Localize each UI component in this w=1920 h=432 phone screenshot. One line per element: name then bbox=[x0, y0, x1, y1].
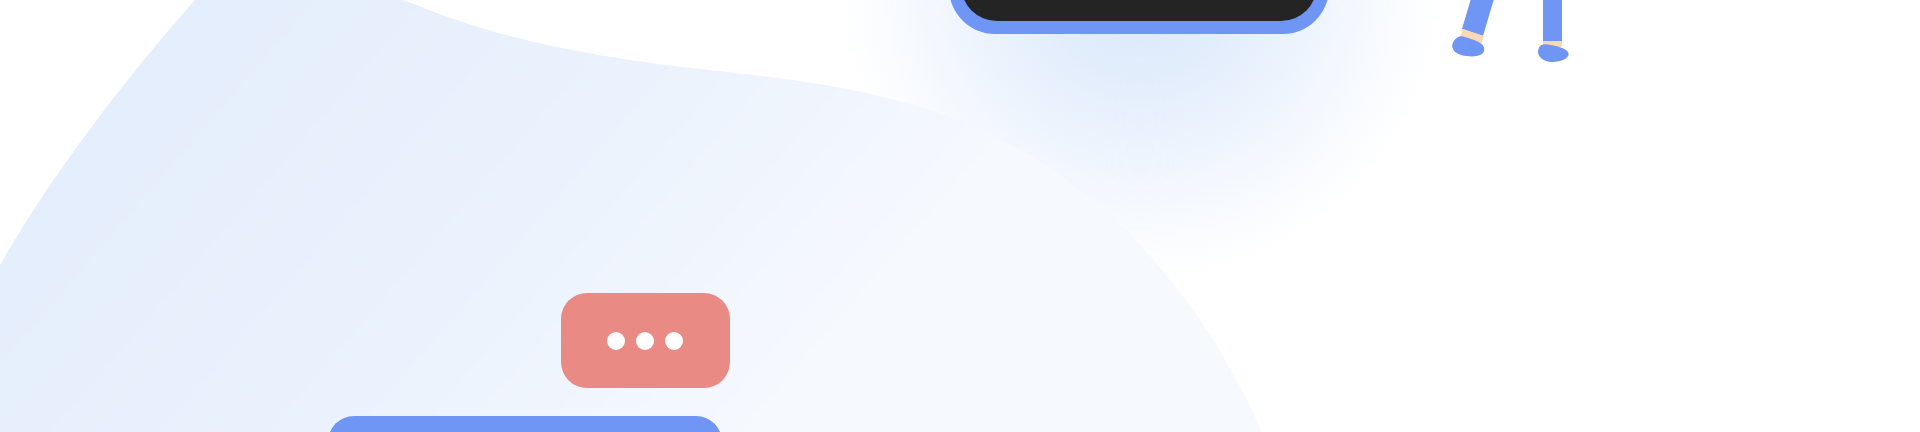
button[interactable]: More options bbox=[0, 0, 1920, 432]
